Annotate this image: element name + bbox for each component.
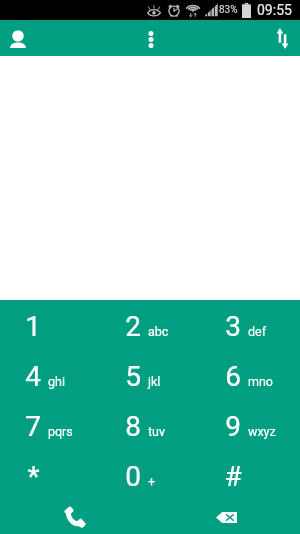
staticText: mno <box>248 374 273 389</box>
staticText: pqrs <box>48 424 73 439</box>
staticText: wxyz <box>248 424 276 439</box>
staticText: def <box>248 324 267 339</box>
staticText: ghi <box>48 374 65 389</box>
staticText: 6 <box>225 360 241 393</box>
button[interactable]: 9 <box>202 401 300 451</box>
button[interactable]: Call <box>55 497 95 534</box>
button[interactable]: Backspace <box>206 497 246 534</box>
staticText: jkl <box>148 374 161 389</box>
staticText: 0 <box>125 460 141 493</box>
button[interactable]: 4 <box>2 351 102 401</box>
staticText: 83% <box>219 4 238 16</box>
staticText: 7 <box>25 410 41 443</box>
button[interactable]: 0 <box>102 451 202 501</box>
staticText: 3 <box>225 310 241 343</box>
button[interactable]: 5 <box>102 351 202 401</box>
button[interactable]: 6 <box>202 351 300 401</box>
staticText: abc <box>148 324 169 339</box>
button[interactable]: 1 <box>2 301 102 351</box>
staticText: * <box>27 460 40 493</box>
button[interactable]: * <box>2 451 102 501</box>
staticText: # <box>224 460 242 493</box>
button[interactable]: Contacts <box>0 21 38 57</box>
staticText: + <box>148 474 156 489</box>
staticText: 2 <box>125 310 141 343</box>
button[interactable]: 3 <box>202 301 300 351</box>
staticText: 5 <box>125 360 141 393</box>
button[interactable]: More options <box>131 21 171 57</box>
button[interactable]: Swap <box>262 20 300 56</box>
staticText: 4 <box>25 360 41 393</box>
button[interactable]: 8 <box>102 401 202 451</box>
button[interactable]: 7 <box>2 401 102 451</box>
staticText: 9 <box>225 410 241 443</box>
staticText: tuv <box>148 424 166 439</box>
staticText: 09:55 <box>257 2 292 18</box>
staticText: 8 <box>125 410 141 443</box>
staticText: 1 <box>25 310 41 343</box>
button[interactable]: # <box>202 451 300 501</box>
button[interactable]: 2 <box>102 301 202 351</box>
